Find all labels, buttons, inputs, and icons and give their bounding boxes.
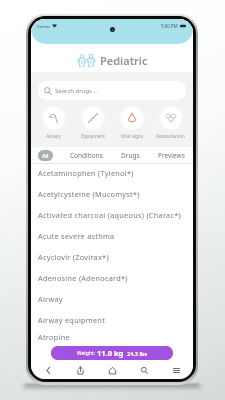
staticText: 5:00 PM: [161, 23, 178, 29]
button[interactable]: Acyclovir (Zovirax*): [31, 246, 193, 267]
button[interactable]: All: [38, 150, 53, 161]
button[interactable]: Acetaminophen (Tylenol*): [31, 162, 193, 183]
button[interactable]: Atropine: [31, 330, 193, 344]
staticText: Pediatric: [100, 53, 148, 68]
button[interactable]: Search drugs ..: [38, 81, 186, 100]
staticText: Vital signs: [121, 133, 143, 139]
staticText: Acute severe asthma: [38, 231, 115, 241]
staticText: Airway equipment: [38, 315, 106, 325]
button[interactable]: Equipment: [73, 105, 112, 139]
staticText: Carrier: [37, 23, 51, 29]
button[interactable]: Resuscitation: [151, 105, 190, 139]
button[interactable]: Menu: [168, 363, 184, 377]
staticText: Airway: [38, 294, 63, 304]
button[interactable]: Vital signs: [112, 105, 151, 139]
button[interactable]: Airway equipment: [31, 309, 193, 330]
staticText: Equipment: [81, 133, 105, 139]
staticText: Activated charcoal (aqueous) (Charac*): [38, 210, 181, 220]
staticText: Atropine: [38, 332, 70, 342]
button[interactable]: Share: [72, 363, 88, 377]
button[interactable]: Weight:: [51, 346, 173, 360]
button[interactable]: Conditions: [70, 151, 103, 160]
staticText: Acetylcysteine (Mucomyst*): [38, 189, 140, 199]
button[interactable]: Search: [136, 363, 152, 377]
button[interactable]: Activated charcoal (aqueous) (Charac*): [31, 204, 193, 225]
button[interactable]: Acetylcysteine (Mucomyst*): [31, 183, 193, 204]
button[interactable]: Drugs: [121, 151, 140, 160]
staticText: Acyclovir (Zovirax*): [38, 252, 109, 262]
staticText: All: [42, 152, 49, 159]
staticText: Search drugs ..: [55, 87, 97, 95]
button[interactable]: Previews: [158, 151, 185, 160]
staticText: Resuscitation: [156, 133, 185, 139]
staticText: 11.0 kg: [97, 348, 124, 358]
button[interactable]: Acute severe asthma: [31, 225, 193, 246]
staticText: Adenosine (Adenocard*): [38, 273, 128, 283]
button[interactable]: Home: [104, 363, 120, 377]
button[interactable]: Airway: [31, 288, 193, 309]
button[interactable]: Adenosine (Adenocard*): [31, 267, 193, 288]
staticText: Airway: [46, 133, 61, 139]
staticText: 24.3 lbs: [127, 350, 148, 357]
staticText: Weight:: [77, 350, 95, 357]
button[interactable]: Airway: [34, 105, 73, 139]
staticText: Acetaminophen (Tylenol*): [38, 168, 134, 178]
button[interactable]: Back: [40, 363, 56, 377]
